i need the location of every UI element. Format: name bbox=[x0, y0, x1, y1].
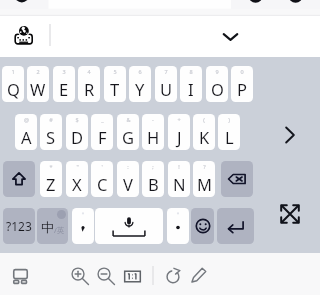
staticText: ) bbox=[228, 116, 230, 123]
button[interactable]: 4 bbox=[78, 66, 100, 102]
button[interactable]: 6 bbox=[129, 66, 151, 102]
button[interactable]: # bbox=[40, 114, 62, 150]
staticText: C bbox=[97, 173, 108, 195]
button[interactable]: Edit bbox=[186, 262, 212, 288]
button[interactable]: $ bbox=[66, 114, 88, 150]
staticText: 1 bbox=[11, 68, 15, 75]
button[interactable]: Emoji bbox=[191, 208, 214, 244]
staticText: Z bbox=[46, 173, 56, 195]
button[interactable]: + bbox=[168, 114, 190, 150]
staticText: W bbox=[30, 78, 46, 100]
button[interactable]: Shift bbox=[3, 161, 35, 197]
button[interactable]: Backspace bbox=[221, 161, 253, 197]
staticText: 6 bbox=[138, 68, 142, 75]
staticText: 3 bbox=[62, 68, 66, 75]
staticText: 中 bbox=[41, 219, 54, 235]
button[interactable]: " bbox=[66, 161, 88, 197]
button[interactable]: 9 bbox=[206, 66, 228, 102]
staticText: F bbox=[98, 126, 107, 148]
staticText: 9 bbox=[215, 68, 219, 75]
button[interactable]: 3 bbox=[53, 66, 75, 102]
staticText: + bbox=[177, 116, 181, 123]
staticText: ! bbox=[178, 163, 180, 170]
button[interactable]: ; bbox=[142, 161, 164, 197]
button[interactable]: ?123 bbox=[3, 208, 35, 244]
staticText: Q bbox=[7, 78, 20, 100]
staticText: 7 bbox=[164, 68, 168, 75]
staticText: E bbox=[59, 78, 69, 100]
button[interactable]: 5 bbox=[104, 66, 126, 102]
staticText: T bbox=[110, 78, 120, 100]
staticText: 8 bbox=[189, 68, 193, 75]
staticText: P bbox=[237, 78, 247, 100]
button[interactable]: 1 bbox=[2, 66, 24, 102]
button[interactable]: - bbox=[142, 114, 164, 150]
staticText: M bbox=[197, 173, 212, 195]
button[interactable]: Space bbox=[95, 208, 163, 244]
button[interactable]: ? bbox=[193, 161, 215, 197]
button[interactable]: 2 bbox=[27, 66, 49, 102]
button[interactable]: Enter bbox=[217, 208, 254, 244]
staticText: 0 bbox=[240, 68, 244, 75]
button[interactable]: 7 bbox=[155, 66, 177, 102]
button[interactable]: Resize keyboard bbox=[276, 200, 304, 228]
staticText: /英 bbox=[54, 225, 65, 235]
staticText: A bbox=[21, 126, 32, 148]
staticText: ?123 bbox=[6, 218, 32, 234]
staticText: B bbox=[148, 173, 159, 195]
button[interactable]: Change input language bbox=[12, 23, 36, 47]
staticText: I bbox=[188, 78, 194, 100]
button[interactable]: * bbox=[40, 161, 62, 197]
button[interactable]: ) bbox=[218, 114, 240, 150]
staticText: S bbox=[46, 126, 56, 148]
button[interactable]: 8 bbox=[180, 66, 202, 102]
staticText: V bbox=[123, 173, 133, 195]
button[interactable]: Period bbox=[167, 208, 189, 244]
staticText: 5 bbox=[113, 68, 117, 75]
button[interactable]: ( bbox=[193, 114, 215, 150]
staticText: Y bbox=[135, 78, 145, 100]
staticText: _ bbox=[101, 116, 104, 123]
staticText: @ bbox=[24, 116, 29, 123]
staticText: 2 bbox=[36, 68, 40, 75]
button[interactable]: ' bbox=[91, 161, 113, 197]
staticText: : bbox=[127, 163, 129, 170]
staticText: D bbox=[71, 126, 84, 148]
staticText: ( bbox=[203, 116, 205, 123]
staticText: L bbox=[225, 126, 234, 148]
button[interactable]: & bbox=[117, 114, 139, 150]
button[interactable]: ! bbox=[168, 161, 190, 197]
staticText: R bbox=[84, 78, 95, 100]
staticText: & bbox=[126, 116, 131, 123]
button[interactable]: Next page bbox=[277, 122, 303, 148]
staticText: " bbox=[76, 163, 79, 170]
staticText: $ bbox=[75, 116, 79, 123]
button[interactable]: Comma bbox=[72, 208, 94, 244]
button[interactable]: Actual size bbox=[119, 263, 146, 290]
staticText: G bbox=[122, 126, 135, 148]
button[interactable]: @ bbox=[15, 114, 37, 150]
button[interactable]: Hide keyboard bbox=[217, 23, 244, 50]
staticText: N bbox=[173, 173, 186, 195]
button[interactable]: : bbox=[117, 161, 139, 197]
staticText: U bbox=[160, 78, 173, 100]
button[interactable]: _ bbox=[91, 114, 113, 150]
staticText: H bbox=[147, 126, 160, 148]
button[interactable]: Switch Chinese English bbox=[37, 208, 68, 244]
staticText: ? bbox=[203, 163, 206, 170]
staticText: O bbox=[211, 78, 224, 100]
staticText: X bbox=[72, 173, 82, 195]
staticText: ; bbox=[152, 163, 154, 170]
button[interactable]: Rotate bbox=[160, 263, 186, 289]
staticText: # bbox=[49, 116, 53, 123]
staticText: 4 bbox=[87, 68, 91, 75]
staticText: - bbox=[152, 116, 154, 123]
button[interactable]: Zoom out bbox=[92, 262, 120, 290]
staticText: * bbox=[49, 163, 53, 170]
staticText: K bbox=[199, 126, 210, 148]
staticText: J bbox=[177, 126, 182, 148]
button[interactable]: 0 bbox=[231, 66, 253, 102]
button[interactable]: Present bbox=[8, 264, 33, 289]
staticText: ' bbox=[101, 163, 103, 170]
button[interactable]: Zoom in bbox=[66, 262, 94, 290]
